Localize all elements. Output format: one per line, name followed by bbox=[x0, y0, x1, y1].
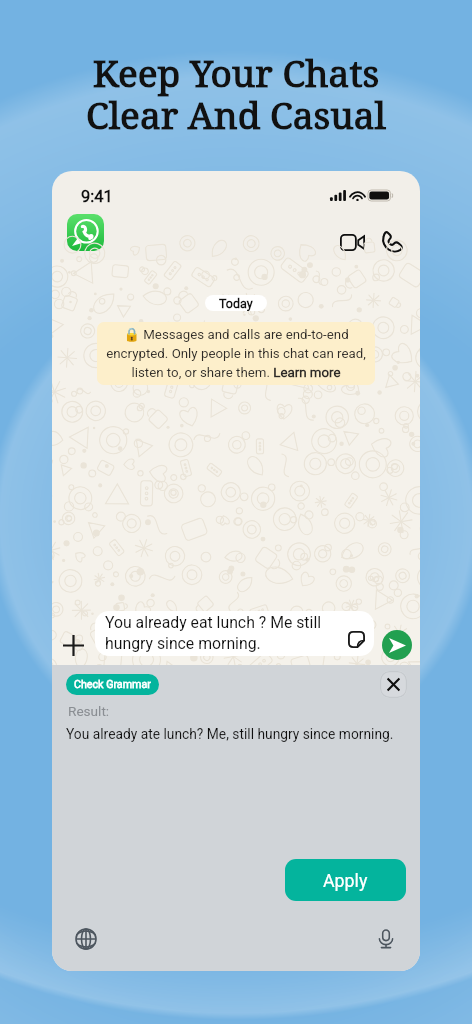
button[interactable]: Voice call bbox=[374, 224, 410, 260]
staticText: Result: bbox=[68, 703, 110, 719]
staticText: Today bbox=[219, 296, 253, 311]
button[interactable]: Attach bbox=[55, 627, 92, 664]
staticText: You already ate lunch? Me, still hungry … bbox=[66, 726, 394, 742]
button[interactable]: Language bbox=[70, 923, 102, 955]
button[interactable]: Microphone bbox=[370, 923, 402, 955]
staticText: Keep Your Chats Clear And Casual bbox=[0, 47, 472, 140]
button[interactable]: Apply bbox=[285, 859, 406, 901]
button[interactable]: Video call bbox=[334, 224, 370, 260]
staticText: Apply bbox=[323, 870, 368, 891]
staticText: 9:41 bbox=[81, 187, 113, 206]
staticText: Check Grammar bbox=[74, 678, 151, 691]
button[interactable]: Check Grammar bbox=[66, 674, 159, 695]
button[interactable]: WhatsApp bbox=[67, 214, 104, 251]
button[interactable]: You already eat lunch ? Me still hungry … bbox=[95, 611, 374, 656]
button[interactable]: Send bbox=[382, 630, 412, 660]
staticText: You already eat lunch ? Me still hungry … bbox=[105, 613, 338, 653]
button[interactable]: Close bbox=[380, 671, 407, 698]
staticText: 🔒 Messages and calls are end-to-end encr… bbox=[102, 327, 370, 380]
